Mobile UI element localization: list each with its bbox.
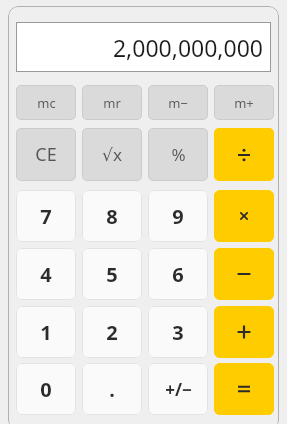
staticText: mc xyxy=(37,94,56,112)
staticText: 0 xyxy=(40,376,52,403)
button[interactable]: 2 xyxy=(82,306,142,358)
staticText: √x xyxy=(102,143,122,166)
button[interactable]: mr xyxy=(82,85,142,120)
staticText: m− xyxy=(168,94,188,112)
staticText: 1 xyxy=(40,319,52,346)
button[interactable]: Add xyxy=(214,306,274,358)
staticText: 4 xyxy=(40,261,52,288)
button[interactable]: % xyxy=(148,128,208,181)
button[interactable]: 0 xyxy=(16,363,76,415)
staticText: % xyxy=(171,143,186,166)
button[interactable]: m+ xyxy=(214,85,274,120)
staticText: 8 xyxy=(106,203,118,230)
button[interactable]: √x xyxy=(82,128,142,181)
staticText: +/− xyxy=(165,378,192,401)
button[interactable]: Equals xyxy=(214,363,274,415)
staticText: mr xyxy=(103,94,121,112)
button[interactable]: Divide xyxy=(214,128,274,181)
staticText: 3 xyxy=(172,319,184,346)
button[interactable]: 5 xyxy=(82,248,142,300)
staticText: 2 xyxy=(106,319,118,346)
staticText: 9 xyxy=(172,203,184,230)
button[interactable]: 1 xyxy=(16,306,76,358)
button[interactable]: 7 xyxy=(16,190,76,242)
button[interactable]: Multiply xyxy=(214,190,274,242)
staticText: 5 xyxy=(106,261,118,288)
button[interactable]: 4 xyxy=(16,248,76,300)
button[interactable]: CE xyxy=(16,128,76,181)
staticText: . xyxy=(109,376,115,403)
staticText: 6 xyxy=(172,261,184,288)
button[interactable]: mc xyxy=(16,85,76,120)
staticText: 2,000,000,000 xyxy=(112,32,263,63)
staticText: CE xyxy=(35,142,57,167)
button[interactable]: +/− xyxy=(148,363,208,415)
button[interactable]: m− xyxy=(148,85,208,120)
button[interactable]: 3 xyxy=(148,306,208,358)
button[interactable]: . xyxy=(82,363,142,415)
button[interactable]: Subtract xyxy=(214,248,274,300)
button[interactable]: 6 xyxy=(148,248,208,300)
staticText: m+ xyxy=(234,94,254,112)
button[interactable]: 9 xyxy=(148,190,208,242)
button[interactable]: 8 xyxy=(82,190,142,242)
staticText: 7 xyxy=(40,203,52,230)
